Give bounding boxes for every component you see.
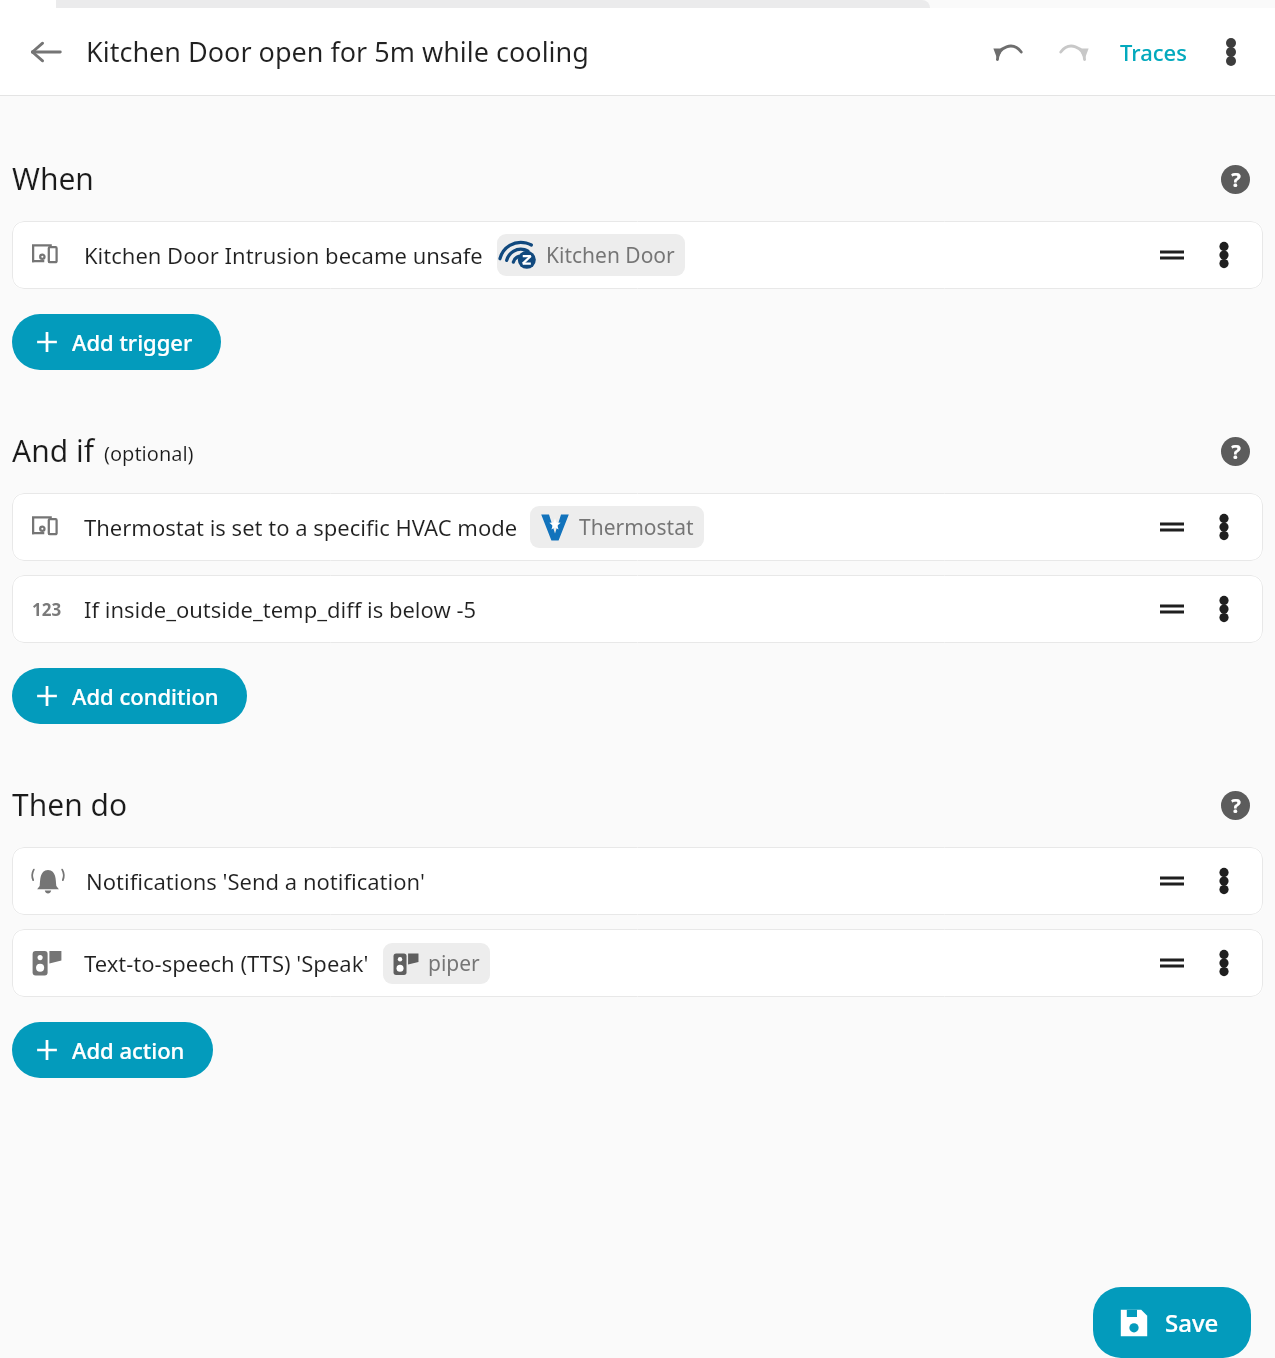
button[interactable]: Help bbox=[1215, 159, 1255, 199]
staticText: Kitchen Door bbox=[546, 241, 675, 270]
staticText: 123 bbox=[32, 598, 62, 621]
staticText: ? bbox=[1231, 166, 1241, 193]
button[interactable]: Kitchen Door bbox=[497, 234, 685, 276]
staticText: Notifications 'Send a notification' bbox=[86, 866, 425, 896]
staticText: Kitchen Door open for 5m while cooling bbox=[86, 33, 589, 70]
button[interactable]: Add trigger bbox=[12, 314, 221, 370]
button[interactable]: More options bbox=[1201, 940, 1247, 986]
button[interactable]: Back bbox=[18, 24, 74, 80]
staticText: piper bbox=[428, 949, 480, 978]
staticText: Kitchen Door Intrusion became unsafe bbox=[84, 240, 483, 270]
button[interactable]: Notifications 'Send a notification' bbox=[12, 847, 1263, 915]
button[interactable]: More options bbox=[1205, 26, 1257, 78]
staticText: Thermostat is set to a specific HVAC mod… bbox=[84, 512, 518, 542]
button[interactable]: Kitchen Door Intrusion became unsafe bbox=[12, 221, 1263, 289]
staticText: Thermostat bbox=[579, 513, 694, 542]
staticText: ? bbox=[1231, 792, 1241, 819]
button[interactable]: Add condition bbox=[12, 668, 247, 724]
button[interactable]: More options bbox=[1201, 232, 1247, 278]
staticText: Add trigger bbox=[72, 327, 193, 357]
button[interactable]: piper bbox=[383, 943, 490, 984]
staticText: If inside_outside_temp_diff is below -5 bbox=[84, 594, 477, 624]
button[interactable]: More options bbox=[1201, 504, 1247, 550]
button[interactable]: Help bbox=[1215, 785, 1255, 825]
staticText: Traces bbox=[1120, 37, 1187, 67]
staticText: And if bbox=[12, 430, 95, 471]
staticText: Then do bbox=[12, 784, 128, 825]
button[interactable]: Traces bbox=[1110, 29, 1197, 75]
button[interactable]: Undo bbox=[982, 25, 1036, 79]
button[interactable]: Reorder bbox=[1149, 232, 1195, 278]
staticText: Text-to-speech (TTS) 'Speak' bbox=[84, 948, 369, 978]
button[interactable]: Help bbox=[1215, 431, 1255, 471]
button[interactable]: Reorder bbox=[1149, 586, 1195, 632]
button[interactable]: Redo bbox=[1046, 25, 1100, 79]
staticText: When bbox=[12, 158, 94, 199]
staticText: Add action bbox=[72, 1035, 185, 1065]
button[interactable]: Reorder bbox=[1149, 504, 1195, 550]
button[interactable]: Reorder bbox=[1149, 940, 1195, 986]
button[interactable]: Add action bbox=[12, 1022, 213, 1078]
button[interactable]: More options bbox=[1201, 858, 1247, 904]
button[interactable]: Reorder bbox=[1149, 858, 1195, 904]
button[interactable]: Save bbox=[1093, 1287, 1251, 1358]
button[interactable]: Thermostat bbox=[530, 506, 704, 548]
button[interactable]: More options bbox=[1201, 586, 1247, 632]
button[interactable]: 123 bbox=[12, 575, 1263, 643]
staticText: Add condition bbox=[72, 681, 219, 711]
staticText: ? bbox=[1231, 438, 1241, 465]
button[interactable]: Thermostat is set to a specific HVAC mod… bbox=[12, 493, 1263, 561]
button[interactable]: Text-to-speech (TTS) 'Speak' bbox=[12, 929, 1263, 997]
staticText: Save bbox=[1165, 1306, 1219, 1339]
staticText: (optional) bbox=[104, 440, 194, 467]
